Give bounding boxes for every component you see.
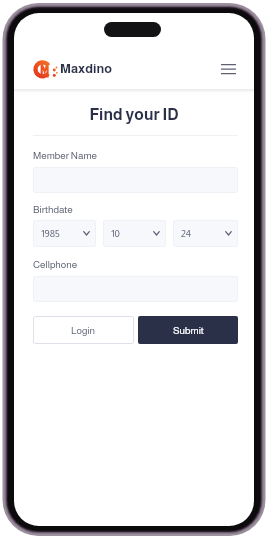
- button[interactable]: Submit: [138, 316, 238, 344]
- button[interactable]: Open menu: [218, 59, 239, 79]
- button[interactable]: 24: [173, 220, 238, 247]
- staticText: Member Name: [33, 150, 98, 161]
- button[interactable]: Login: [33, 316, 134, 344]
- staticText: Maxdino: [60, 61, 113, 76]
- staticText: Find your ID: [14, 106, 254, 128]
- staticText: 24: [181, 228, 192, 239]
- button[interactable]: 10: [103, 220, 166, 247]
- staticText: 10: [111, 228, 120, 239]
- button[interactable]: Maxdino: [32, 57, 116, 80]
- staticText: Submit: [173, 325, 204, 336]
- staticText: Login: [71, 325, 96, 336]
- staticText: Birthdate: [33, 204, 73, 215]
- staticText: Cellphone: [33, 259, 78, 270]
- staticText: 1985: [41, 228, 60, 239]
- button[interactable]: 1985: [33, 220, 96, 247]
